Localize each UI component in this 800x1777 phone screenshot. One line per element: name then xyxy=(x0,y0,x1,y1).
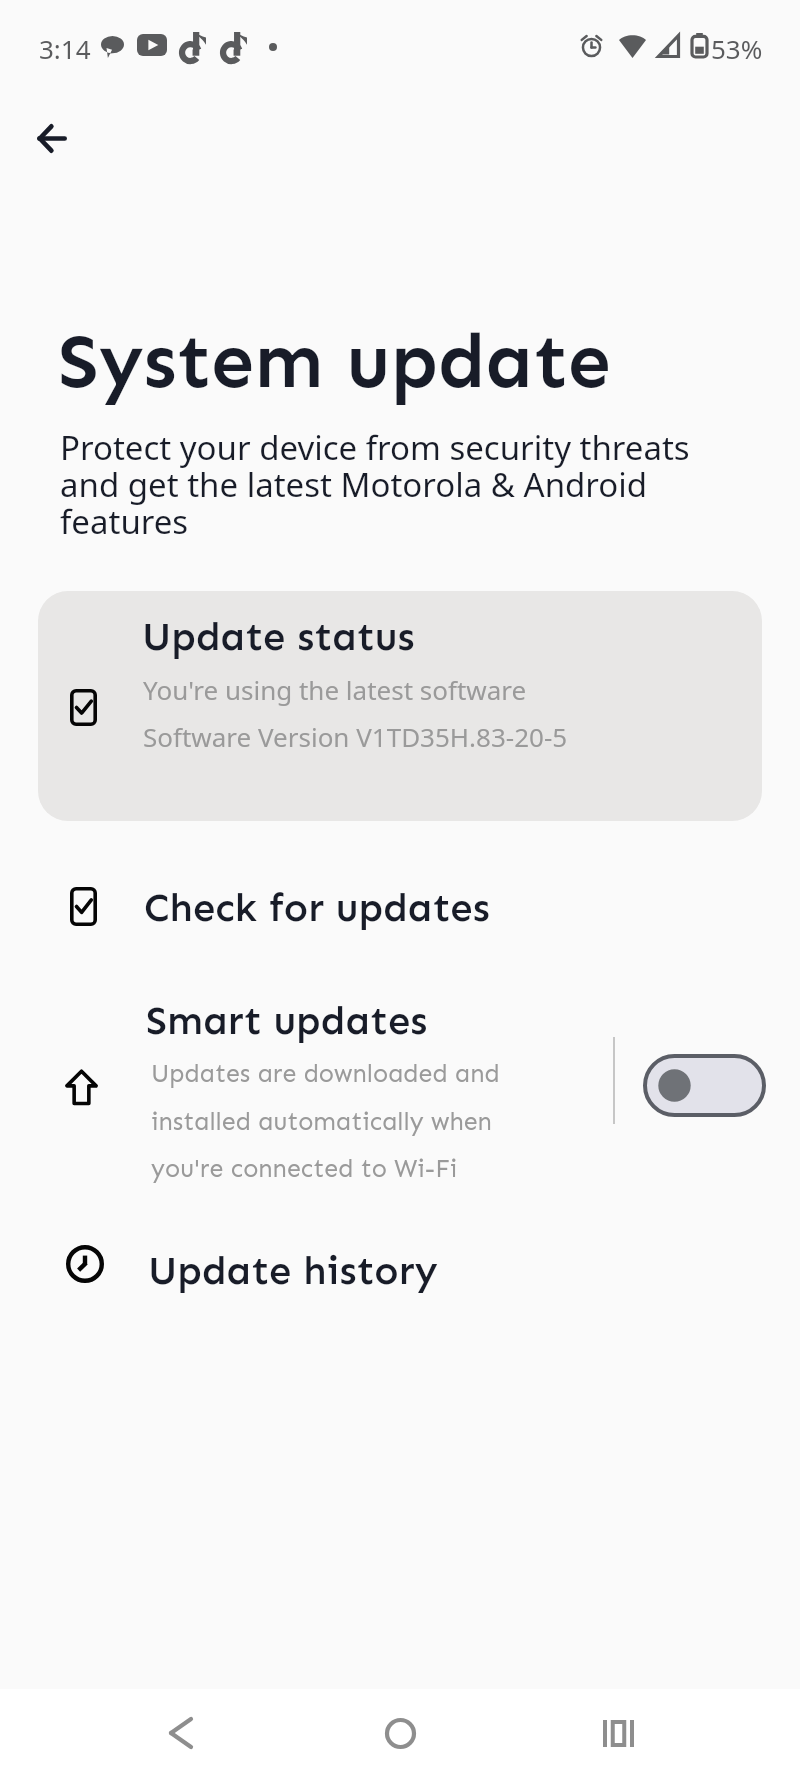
button[interactable]: Update status xyxy=(38,591,762,821)
button[interactable]: Home xyxy=(350,1689,450,1777)
staticText: System update xyxy=(58,315,611,408)
staticText: Updates are downloaded and installed aut… xyxy=(151,1059,521,1183)
staticText: Update status xyxy=(142,612,415,660)
button[interactable]: Update history xyxy=(0,1228,800,1320)
staticText: Update history xyxy=(148,1246,438,1294)
staticText: Check for updates xyxy=(144,883,490,931)
button[interactable]: Recent apps xyxy=(568,1689,668,1777)
button[interactable]: Back xyxy=(131,1689,231,1777)
button[interactable]: Check for updates xyxy=(0,862,800,954)
staticText: Smart updates xyxy=(146,996,428,1044)
staticText: 53% xyxy=(711,31,763,66)
staticText: Protect your device from security threat… xyxy=(60,425,710,544)
staticText: Software Version V1TD35H.83-20-5 xyxy=(143,719,568,754)
staticText: 3:14 xyxy=(39,31,91,66)
button[interactable]: Smart updates toggle xyxy=(645,1056,764,1115)
staticText: You're using the latest software xyxy=(143,672,527,707)
button[interactable]: Back xyxy=(4,90,100,186)
